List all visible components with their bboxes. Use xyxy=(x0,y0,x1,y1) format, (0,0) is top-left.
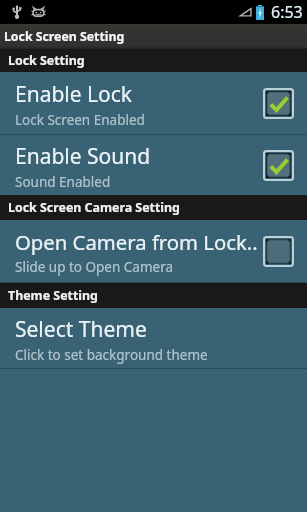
button[interactable]: Enable Sound xyxy=(0,135,307,195)
staticText: Lock Screen Camera Setting xyxy=(8,199,180,216)
staticText: Enable Sound xyxy=(15,142,151,171)
staticText: Sound Enabled xyxy=(15,173,111,191)
staticText: Slide up to Open Camera xyxy=(15,258,174,276)
button[interactable]: Open Camera from Lock.. xyxy=(0,220,307,282)
button[interactable]: Checked xyxy=(262,87,294,119)
staticText: Select Theme xyxy=(15,315,147,344)
staticText: Click to set background theme xyxy=(15,346,208,364)
staticText: Lock Screen Setting xyxy=(4,28,125,45)
button[interactable]: Enable Lock xyxy=(0,72,307,134)
button[interactable]: Unchecked xyxy=(262,235,294,267)
button[interactable]: Select Theme xyxy=(0,308,307,368)
staticText: Open Camera from Lock.. xyxy=(15,228,258,256)
staticText: 6:53 xyxy=(271,1,303,23)
staticText: Theme Setting xyxy=(8,287,98,304)
staticText: Lock Screen Enabled xyxy=(15,111,145,129)
button[interactable]: Checked xyxy=(262,149,294,181)
staticText: Enable Lock xyxy=(15,80,133,109)
staticText: Lock Setting xyxy=(8,52,85,69)
